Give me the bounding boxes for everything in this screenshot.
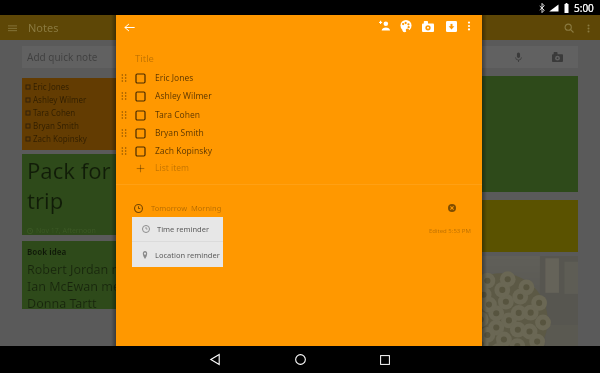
button[interactable]: Voice note	[510, 49, 526, 65]
staticText: Ashley Wilmer	[155, 90, 212, 102]
button[interactable]: Eric Jones	[116, 69, 482, 87]
button[interactable]: Tara Cohen	[26, 106, 76, 119]
button[interactable]: Remove reminder	[444, 200, 460, 216]
button[interactable]: List item	[116, 159, 482, 177]
staticText: Zach Kopinsky	[155, 145, 213, 157]
button[interactable]: Bryan Smith	[116, 124, 482, 142]
staticText: Zach Kopinsky	[33, 133, 87, 144]
staticText: Edited 5:53 PM	[429, 227, 471, 235]
staticText: Notes	[28, 20, 59, 35]
button[interactable]: Eric Jones	[26, 80, 70, 93]
staticText: Eric Jones	[33, 81, 70, 92]
staticText: Title	[135, 52, 154, 65]
staticText: Bryan Smith	[33, 120, 79, 131]
staticText: Eric Jones	[155, 72, 194, 84]
staticText: Pack for	[27, 155, 111, 185]
button[interactable]: Add collaborator	[374, 15, 396, 37]
staticText: Tara Cohen	[33, 107, 76, 118]
staticText: Robert Jordan mee	[27, 261, 138, 278]
button[interactable]: More options	[580, 20, 596, 36]
button[interactable]: Open navigation drawer	[4, 20, 20, 36]
button[interactable]: More options	[458, 15, 480, 37]
staticText: List item	[155, 162, 190, 174]
staticText: Add quick note	[27, 50, 98, 64]
staticText: Morning	[191, 203, 222, 213]
button[interactable]: Time reminder	[132, 217, 223, 241]
button[interactable]: Bryan Smith	[26, 119, 79, 132]
button[interactable]: Zach Kopinsky	[26, 132, 87, 145]
button[interactable]: Home	[285, 346, 315, 373]
staticText: Tomorrow	[151, 203, 188, 213]
button[interactable]: Search	[561, 20, 577, 36]
button[interactable]: Tara Cohen	[116, 106, 482, 124]
button[interactable]: Archive	[440, 15, 462, 37]
staticText: Bryan Smith	[155, 127, 204, 139]
staticText: Tara Cohen	[155, 109, 200, 121]
staticText: Nov 17, Afternoon	[36, 226, 96, 235]
staticText: trip	[27, 185, 64, 215]
button[interactable]: Tomorrow	[134, 201, 222, 215]
button[interactable]: Add quick note	[22, 46, 578, 68]
staticText: 5:00	[574, 1, 594, 15]
button[interactable]: Back	[200, 346, 230, 373]
button[interactable]: Zach Kopinsky	[116, 142, 482, 160]
button[interactable]: Take photo	[417, 15, 439, 37]
button[interactable]: Back	[118, 16, 140, 38]
staticText: Ian McEwan meets	[27, 278, 138, 295]
button[interactable]: Ashley Wilmer	[26, 93, 87, 106]
button[interactable]: Recent apps	[370, 346, 400, 373]
button[interactable]: Photo note	[549, 49, 565, 65]
button[interactable]: Change colour	[395, 15, 417, 37]
staticText: Location reminder	[155, 250, 220, 260]
staticText: Book idea	[27, 246, 67, 257]
staticText: Time reminder	[157, 224, 209, 234]
button[interactable]: Ashley Wilmer	[116, 87, 482, 105]
button[interactable]: Location reminder	[132, 242, 223, 267]
staticText: Ashley Wilmer	[33, 94, 87, 105]
staticText: Donna Tartt	[27, 295, 97, 309]
